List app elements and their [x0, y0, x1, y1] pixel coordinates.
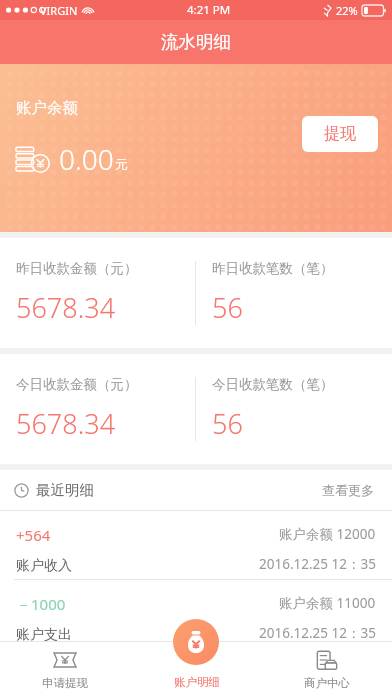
staticText: 56 — [212, 405, 243, 442]
staticText: 元 — [115, 156, 128, 172]
staticText: 4:21 PM — [187, 2, 231, 18]
staticText: 最近明细 — [36, 481, 94, 499]
staticText: 今日收款笔数（笔） — [212, 376, 334, 393]
staticText: 2016.12.25 12：35 — [259, 624, 376, 642]
button[interactable]: 提现 — [302, 116, 378, 152]
staticText: 账户支出 — [16, 626, 72, 644]
staticText: 提现 — [324, 124, 356, 144]
staticText: 账户收入 — [16, 557, 72, 575]
staticText: 5678.34 — [16, 289, 116, 326]
staticText: 2016.12.25 12：35 — [259, 555, 376, 573]
staticText: 昨日收款笔数（笔） — [212, 260, 334, 277]
button[interactable]: 申请提现 — [0, 641, 130, 696]
button[interactable]: 账户明细 — [132, 641, 261, 696]
staticText: 账户余额 — [16, 98, 78, 118]
staticText: 昨日收款金额（元） — [16, 260, 138, 277]
staticText: 56 — [212, 289, 243, 326]
staticText: 今日收款金额（元） — [16, 376, 138, 393]
staticText: 账户明细 — [174, 675, 220, 689]
button[interactable]: 查看更多 — [318, 478, 378, 502]
staticText: 5678.34 — [16, 405, 116, 442]
staticText: 流水明细 — [161, 31, 231, 53]
staticText: 查看更多 — [322, 482, 374, 498]
staticText: 账户余额 11000 — [279, 594, 376, 612]
staticText: 22% — [336, 3, 358, 18]
staticText: 0.00 — [59, 140, 114, 178]
staticText: 账户余额 12000 — [279, 525, 376, 543]
button[interactable]: 商户中心 — [261, 641, 392, 696]
staticText: －1000 — [16, 594, 66, 614]
staticText: +564 — [16, 525, 51, 545]
button[interactable]: +564 — [0, 511, 392, 579]
staticText: 商户中心 — [304, 676, 350, 690]
staticText: VIRGIN — [40, 3, 78, 18]
staticText: 申请提现 — [42, 676, 88, 690]
button[interactable]: 账户明细 — [173, 619, 219, 665]
button[interactable]: －1000 — [0, 580, 392, 648]
